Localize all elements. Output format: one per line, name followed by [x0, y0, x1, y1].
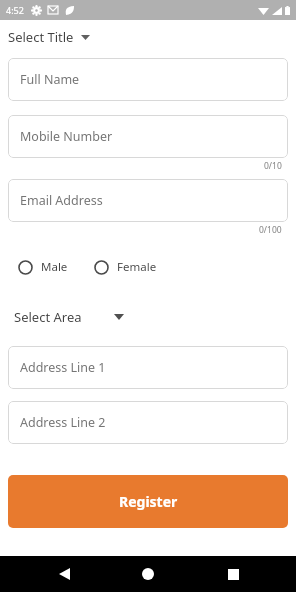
staticText: Male	[41, 259, 68, 275]
button[interactable]: Female	[92, 257, 159, 277]
staticText: Email Address	[20, 192, 103, 209]
button[interactable]: Back	[50, 560, 78, 588]
button[interactable]: Recent apps	[219, 560, 247, 588]
staticText: Select Title	[8, 28, 74, 46]
button[interactable]: Register	[8, 475, 288, 528]
button[interactable]: Email Address	[8, 179, 288, 222]
button[interactable]: Home	[134, 560, 162, 588]
staticText: Address Line 2	[20, 414, 106, 431]
staticText: 0/100	[259, 224, 282, 236]
button[interactable]: Select Title	[0, 20, 296, 54]
staticText: Female	[117, 259, 157, 275]
button[interactable]: Address Line 1	[8, 346, 288, 389]
staticText: Address Line 1	[20, 359, 106, 376]
button[interactable]: Address Line 2	[8, 401, 288, 444]
button[interactable]: Mobile Number	[8, 115, 288, 158]
staticText: Select Area	[14, 308, 82, 326]
staticText: Register	[119, 492, 178, 511]
staticText: Mobile Number	[20, 128, 113, 145]
staticText: 0/10	[264, 160, 282, 172]
staticText: Full Name	[20, 71, 80, 88]
button[interactable]: Full Name	[8, 58, 288, 101]
button[interactable]: Select Area	[0, 302, 296, 332]
staticText: 4:52	[6, 4, 24, 16]
button[interactable]: Male	[16, 257, 70, 277]
